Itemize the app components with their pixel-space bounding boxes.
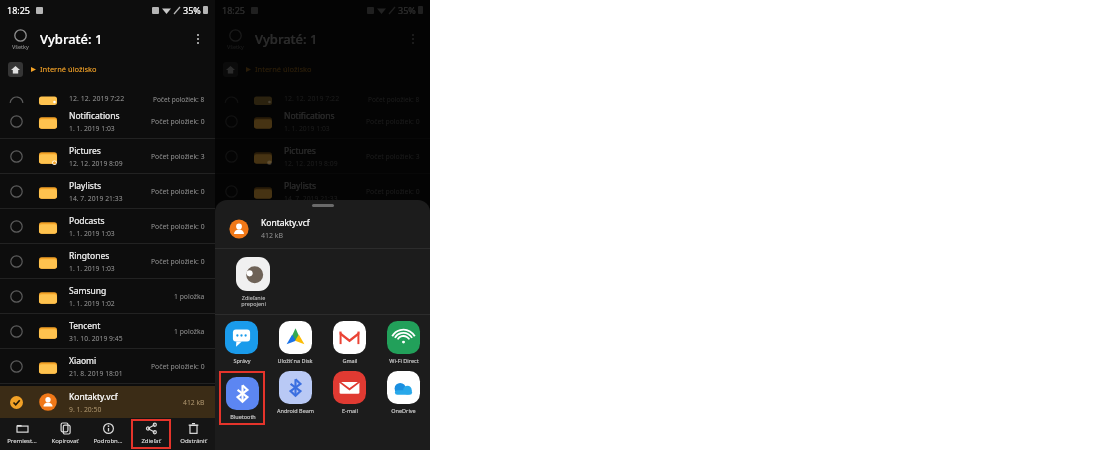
staticText: Samsung xyxy=(69,285,107,297)
staticText: 9. 1. 20:50 xyxy=(284,405,317,414)
staticText: Pictures xyxy=(69,145,101,157)
staticText: 1. 1. 2019 1:02 xyxy=(69,299,115,308)
button[interactable]: Wi-Fi Direct xyxy=(376,321,430,364)
button[interactable]: Ringtones xyxy=(0,244,215,279)
staticText: Premiest… xyxy=(7,437,37,445)
button[interactable]: Gmail xyxy=(322,321,376,364)
staticText: Playlists xyxy=(284,180,317,192)
staticText: Kontakty.vcf xyxy=(261,217,310,229)
staticText: 14. 7. 2019 21:33 xyxy=(284,194,338,203)
staticText: Xiaomi xyxy=(69,355,97,367)
button[interactable]: Premiest… xyxy=(0,418,43,450)
staticText: 12. 12. 2019 7:22 xyxy=(69,94,125,104)
staticText: Správy xyxy=(233,357,251,364)
staticText: 31. 10. 2019 9:45 xyxy=(69,334,123,343)
staticText: Xiaomi xyxy=(284,355,312,367)
staticText: Interné úložisko xyxy=(40,64,97,74)
staticText: 35% xyxy=(183,4,201,16)
button[interactable]: Uložiť na Disk xyxy=(268,321,322,364)
button[interactable]: Správy xyxy=(215,321,268,364)
button[interactable]: More options xyxy=(403,29,423,49)
staticText: Počet položiek: 8 xyxy=(153,95,205,104)
staticText: Počet položiek: 3 xyxy=(151,152,205,161)
staticText: Odstrániť xyxy=(180,437,207,445)
button[interactable]: More options xyxy=(188,29,208,49)
staticText: 412 kB xyxy=(261,231,284,241)
button[interactable]: Pictures xyxy=(215,139,430,174)
button[interactable]: OneDrive xyxy=(376,371,430,414)
button[interactable]: Všetky xyxy=(222,29,249,50)
button[interactable]: Playlists xyxy=(0,174,215,209)
staticText: Kopírovať xyxy=(51,437,79,445)
staticText: Zdieľanie prepojení xyxy=(241,294,266,308)
button[interactable]: E-mail xyxy=(322,371,376,414)
button[interactable]: Odstrániť xyxy=(172,418,215,450)
staticText: Tencent xyxy=(69,320,101,332)
staticText: Počet položiek: 0 xyxy=(151,257,205,266)
staticText: 412 kB xyxy=(183,398,205,407)
staticText: Počet položiek: 0 xyxy=(151,187,205,196)
staticText: Tencent xyxy=(284,320,316,332)
button[interactable]: Samsung xyxy=(215,279,430,314)
button[interactable]: Pictures xyxy=(0,139,215,174)
button[interactable]: Kopírovať xyxy=(258,418,301,450)
button[interactable]: Ringtones xyxy=(215,244,430,279)
staticText: Android Beam xyxy=(277,407,314,414)
button[interactable]: Interné úložisko xyxy=(223,58,430,80)
button[interactable]: Kontakty.vcf xyxy=(0,386,215,418)
button[interactable]: Premiest… xyxy=(215,418,258,450)
staticText: Ringtones xyxy=(69,250,110,262)
staticText: E-mail xyxy=(342,407,358,414)
button[interactable]: Xiaomi xyxy=(0,349,215,384)
button[interactable]: Playlists xyxy=(215,174,430,209)
button[interactable]: Notifications xyxy=(215,104,430,139)
staticText: Uložiť na Disk xyxy=(277,357,313,364)
staticText: OneDrive xyxy=(391,407,416,414)
staticText: Počet položiek: 0 xyxy=(151,222,205,231)
button[interactable]: Zdieľanie prepojení xyxy=(227,257,279,308)
staticText: 1 položka xyxy=(174,327,205,336)
staticText: Počet položiek: 0 xyxy=(366,117,420,126)
staticText: Počet položiek: 3 xyxy=(366,152,420,161)
staticText: 31. 10. 2019 9:45 xyxy=(284,334,338,343)
staticText: Podcasts xyxy=(284,215,320,227)
button[interactable]: Podrobn… xyxy=(86,418,129,450)
staticText: 21. 8. 2019 18:01 xyxy=(284,369,338,378)
button[interactable]: Kontakty.vcf xyxy=(215,386,430,418)
button[interactable]: Notifications xyxy=(0,104,215,139)
staticText: Počet položiek: 0 xyxy=(366,362,420,371)
button[interactable]: Tencent xyxy=(215,314,430,349)
staticText: Gmail xyxy=(342,357,358,364)
button[interactable]: Bluetooth xyxy=(219,371,265,425)
staticText: 9. 1. 20:50 xyxy=(69,405,102,414)
button[interactable]: Zdieľať xyxy=(131,419,171,449)
button[interactable]: Kopírovať xyxy=(43,418,86,450)
staticText: 21. 8. 2019 18:01 xyxy=(69,369,123,378)
staticText: 12. 12. 2019 8:09 xyxy=(69,159,123,168)
button[interactable]: Xiaomi xyxy=(215,349,430,384)
staticText: Podcasts xyxy=(69,215,105,227)
button[interactable]: Interné úložisko xyxy=(8,58,215,80)
button[interactable]: Podcasts xyxy=(0,209,215,244)
staticText: Zdieľať xyxy=(141,437,161,445)
button[interactable]: Kontakty.vcf xyxy=(227,210,430,248)
staticText: 1 položka xyxy=(174,292,205,301)
staticText: 18:25 xyxy=(222,4,246,16)
button[interactable]: Android Beam xyxy=(268,371,322,414)
button[interactable]: Tencent xyxy=(0,314,215,349)
button[interactable]: Všetky xyxy=(7,29,34,50)
button[interactable]: Samsung xyxy=(0,279,215,314)
button[interactable]: Podcasts xyxy=(215,209,430,244)
staticText: 412 kB xyxy=(398,398,420,407)
staticText: Kontakty.vcf xyxy=(284,391,333,403)
staticText: 1. 1. 2019 1:03 xyxy=(69,124,115,133)
